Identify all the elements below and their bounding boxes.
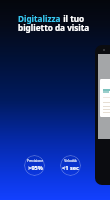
staticText: biglietto da visita [18,22,90,33]
staticText: Velocità [64,159,77,163]
button[interactable]: Precisione [24,155,45,176]
button[interactable]: App preview [95,45,110,185]
staticText: Digitalizza [18,13,61,24]
button[interactable]: Velocità [60,155,81,176]
staticText: Precisione [27,159,43,163]
staticText: >95% [28,164,43,172]
staticText: il tuo [61,13,85,24]
staticText: <1 sec [62,164,79,172]
